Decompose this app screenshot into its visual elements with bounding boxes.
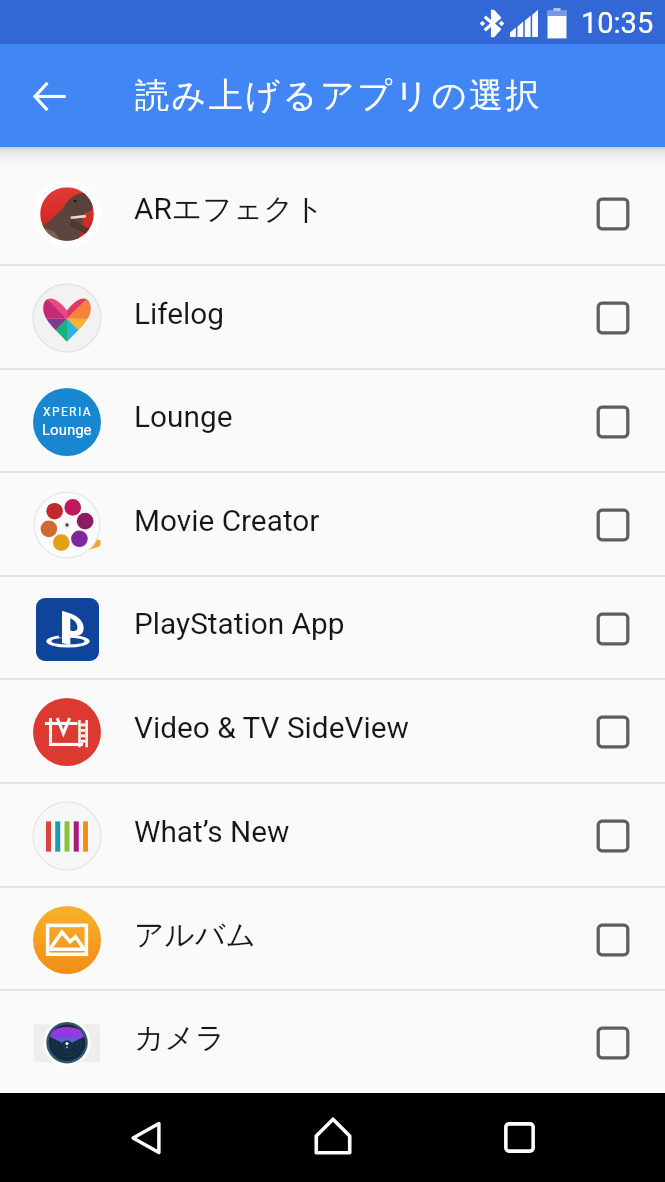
- button[interactable]: Movie Creator: [0, 473, 665, 577]
- staticText: XPERIA: [43, 405, 92, 419]
- staticText: カメラ: [134, 1019, 560, 1057]
- button[interactable]: Select Movie Creator: [560, 473, 665, 577]
- staticText: 10:35: [581, 6, 654, 40]
- staticText: PlayStation App: [134, 606, 560, 641]
- button[interactable]: Select What’s New: [560, 784, 665, 888]
- button[interactable]: What’s New: [0, 784, 665, 888]
- button[interactable]: Select ARエフェクト: [560, 162, 665, 266]
- staticText: 読み上げるアプリの選択: [135, 74, 543, 117]
- button[interactable]: Select PlayStation App: [560, 577, 665, 680]
- button[interactable]: Back: [16, 62, 84, 130]
- staticText: Movie Creator: [134, 503, 560, 538]
- button[interactable]: カメラ: [0, 991, 665, 1095]
- button[interactable]: Select Lifelog: [560, 266, 665, 370]
- button[interactable]: Lifelog: [0, 266, 665, 370]
- button[interactable]: Select アルバム: [560, 888, 665, 991]
- staticText: Lounge: [42, 421, 92, 439]
- staticText: アルバム: [134, 916, 560, 954]
- staticText: Lifelog: [134, 296, 560, 331]
- button[interactable]: Select Video & TV SideView: [560, 680, 665, 784]
- button[interactable]: Home: [277, 1093, 389, 1182]
- button[interactable]: Select Lounge: [560, 370, 665, 473]
- button[interactable]: Video & TV SideView: [0, 680, 665, 784]
- staticText: Video & TV SideView: [134, 710, 560, 745]
- button[interactable]: ARエフェクト: [0, 162, 665, 266]
- staticText: What’s New: [134, 814, 560, 849]
- button[interactable]: PlayStation App: [0, 577, 665, 680]
- button[interactable]: XPERIA: [0, 370, 665, 473]
- button[interactable]: アルバム: [0, 888, 665, 991]
- button[interactable]: Recents: [463, 1093, 575, 1182]
- staticText: ARエフェクト: [134, 190, 560, 228]
- staticText: Lounge: [134, 399, 560, 434]
- button[interactable]: Navigate back: [90, 1093, 202, 1182]
- button[interactable]: Select カメラ: [560, 991, 665, 1095]
